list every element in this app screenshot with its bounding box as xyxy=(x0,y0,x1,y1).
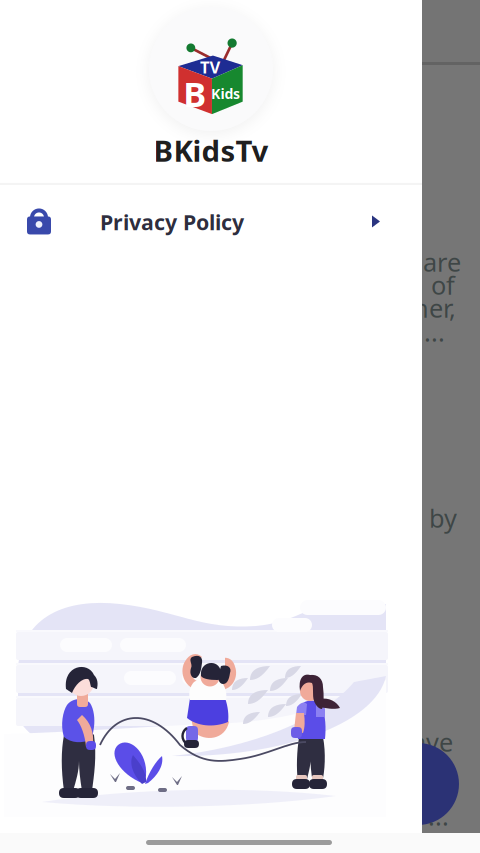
staticText: n of xyxy=(408,268,455,302)
staticText: Privacy Policy xyxy=(100,208,244,236)
staticText: BKidsTv xyxy=(153,131,268,170)
button[interactable]: Privacy Policy xyxy=(0,185,422,255)
staticText: s are xyxy=(404,245,461,279)
staticText: p by xyxy=(406,501,457,535)
staticText: B xyxy=(182,71,206,118)
staticText: Kids xyxy=(211,85,241,104)
staticText: TV xyxy=(199,55,220,78)
staticText: ther, xyxy=(404,291,456,325)
staticText: ave xyxy=(412,725,453,759)
staticText: ... xyxy=(428,799,449,833)
staticText: ... xyxy=(424,315,445,349)
